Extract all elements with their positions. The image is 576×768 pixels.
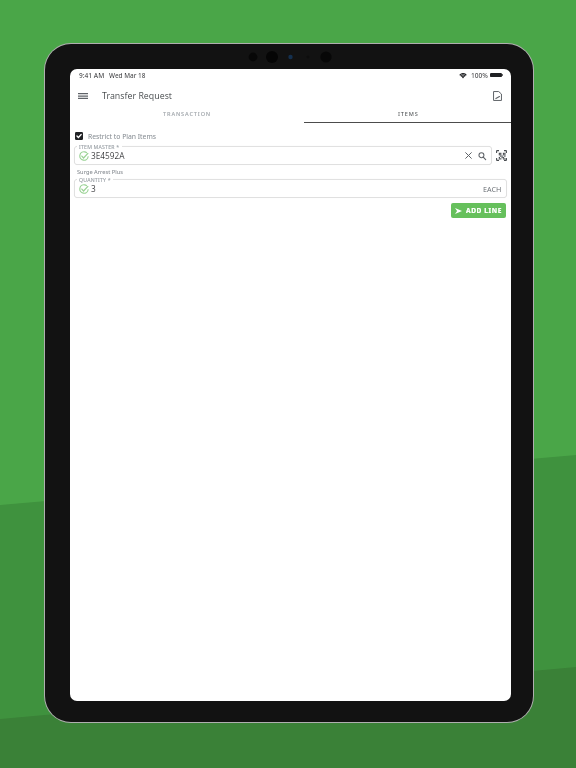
staticText: Transfer Request	[102, 90, 173, 102]
staticText: 100%	[471, 71, 488, 80]
staticText: EACH	[483, 184, 502, 194]
button[interactable]: Scan barcode	[496, 150, 507, 161]
staticText: Wed Mar 18	[109, 71, 146, 80]
button[interactable]: ADD LINE	[451, 203, 506, 218]
button[interactable]: ITEMS	[304, 108, 511, 127]
button[interactable]: Clear	[462, 149, 475, 162]
staticText: Restrict to Plan Items	[88, 132, 156, 141]
staticText: ITEM MASTER *	[79, 143, 120, 150]
staticText: 9:41 AM	[79, 71, 105, 80]
staticText: 3	[91, 183, 96, 194]
staticText: Surge Arrest Plus	[77, 168, 123, 176]
staticText: QUANTITY *	[79, 176, 111, 183]
staticText: TRANSACTION	[163, 110, 212, 118]
staticText: 3E4592A	[91, 150, 125, 161]
button[interactable]: Open navigation menu	[70, 83, 96, 108]
staticText: ADD LINE	[466, 206, 503, 215]
button[interactable]: Restrict to Plan Items	[74, 130, 156, 142]
button[interactable]: TRANSACTION	[77, 108, 297, 127]
button[interactable]: Search	[475, 149, 488, 162]
staticText: ITEMS	[398, 110, 419, 118]
button[interactable]: Notes	[484, 83, 510, 108]
